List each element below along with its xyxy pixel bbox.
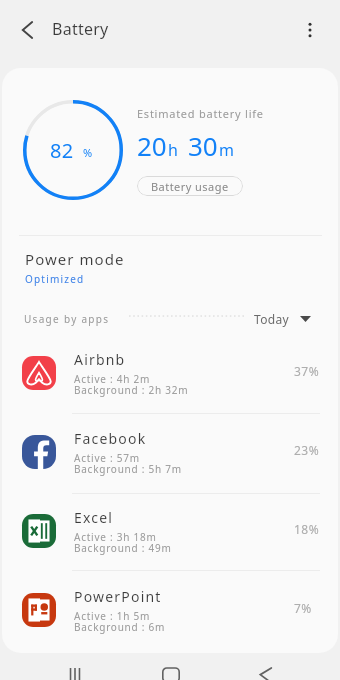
staticText: h	[168, 139, 178, 161]
button[interactable]: Battery usage	[137, 176, 243, 196]
staticText: m	[219, 139, 234, 161]
button[interactable]: Airbnb	[2, 354, 338, 433]
staticText: Background : 5h 7m	[74, 462, 182, 476]
staticText: Background : 49m	[74, 541, 172, 555]
button[interactable]: Back	[12, 16, 40, 44]
staticText: Background : 6m	[74, 620, 166, 634]
button[interactable]: Facebook	[2, 433, 338, 512]
button[interactable]: Power mode	[2, 244, 338, 300]
staticText: Optimized	[25, 272, 85, 286]
staticText: Excel	[74, 508, 114, 527]
button[interactable]: Home	[151, 660, 191, 680]
button[interactable]: Excel	[2, 512, 338, 591]
staticText: Battery usage	[151, 179, 229, 194]
staticText: 7%	[294, 600, 322, 616]
staticText: 18%	[294, 521, 322, 537]
staticText: Battery	[52, 18, 109, 40]
staticText: Usage by apps	[24, 312, 110, 326]
staticText: PowerPoint	[74, 587, 162, 606]
staticText: Power mode	[25, 249, 125, 269]
button[interactable]: PowerPoint	[2, 591, 338, 653]
staticText: Estimated battery life	[137, 106, 264, 121]
staticText: 82	[50, 137, 74, 164]
staticText: 20	[137, 128, 167, 163]
staticText: Background : 2h 32m	[74, 383, 189, 397]
staticText: Facebook	[74, 429, 147, 448]
staticText: 37%	[294, 363, 322, 379]
staticText: Active : 57m	[74, 451, 140, 465]
staticText: Active : 1h 5m	[74, 609, 151, 623]
staticText: Airbnb	[74, 350, 126, 369]
button[interactable]: More options	[296, 16, 324, 44]
staticText: %	[83, 145, 93, 160]
staticText: Today	[254, 311, 290, 327]
button[interactable]: Back	[245, 660, 285, 680]
staticText: 23%	[294, 442, 322, 458]
staticText: Active : 3h 18m	[74, 530, 157, 544]
staticText: Active : 4h 2m	[74, 372, 151, 386]
staticText: 30	[188, 128, 218, 163]
button[interactable]: Recents	[55, 660, 95, 680]
button[interactable]: Today	[252, 309, 313, 329]
